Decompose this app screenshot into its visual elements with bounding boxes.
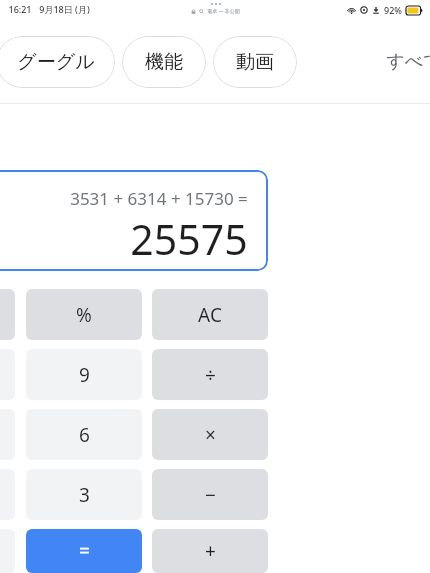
staticText: 25575: [130, 211, 248, 267]
button[interactable]: グーグル: [0, 36, 115, 88]
staticText: 16:21: [8, 3, 32, 15]
button[interactable]: 6: [26, 409, 142, 460]
button[interactable]: 動画: [213, 36, 297, 88]
staticText: %: [76, 302, 92, 328]
staticText: すべて: [386, 50, 430, 73]
button[interactable]: %: [26, 289, 142, 340]
staticText: 動画: [236, 50, 274, 74]
staticText: 9: [79, 362, 90, 388]
staticText: 3531 + 6314 + 15730 =: [70, 187, 248, 210]
button[interactable]: =: [26, 529, 142, 573]
button[interactable]: −: [152, 469, 268, 520]
staticText: AC: [198, 302, 222, 328]
button[interactable]: 機能: [122, 36, 206, 88]
staticText: 92%: [384, 4, 402, 16]
staticText: ×: [205, 422, 216, 448]
button[interactable]: 9: [26, 349, 142, 400]
staticText: =: [79, 538, 90, 564]
button[interactable]: Calculator key: [0, 289, 15, 340]
button[interactable]: 3531 + 6314 + 15730 =: [0, 170, 268, 271]
staticText: 電卓 — 非公開: [207, 8, 240, 15]
staticText: −: [205, 482, 216, 508]
staticText: ÷: [205, 362, 216, 388]
staticText: グーグル: [17, 50, 95, 74]
staticText: 3: [79, 482, 90, 508]
button[interactable]: ×: [152, 409, 268, 460]
button[interactable]: AC: [152, 289, 268, 340]
button[interactable]: ÷: [152, 349, 268, 400]
button[interactable]: すべて: [382, 42, 430, 81]
button[interactable]: 3: [26, 469, 142, 520]
staticText: 9月18日 (月): [39, 3, 90, 15]
staticText: +: [205, 538, 216, 564]
staticText: 6: [79, 422, 90, 448]
staticText: 機能: [145, 50, 183, 74]
button[interactable]: +: [152, 529, 268, 573]
